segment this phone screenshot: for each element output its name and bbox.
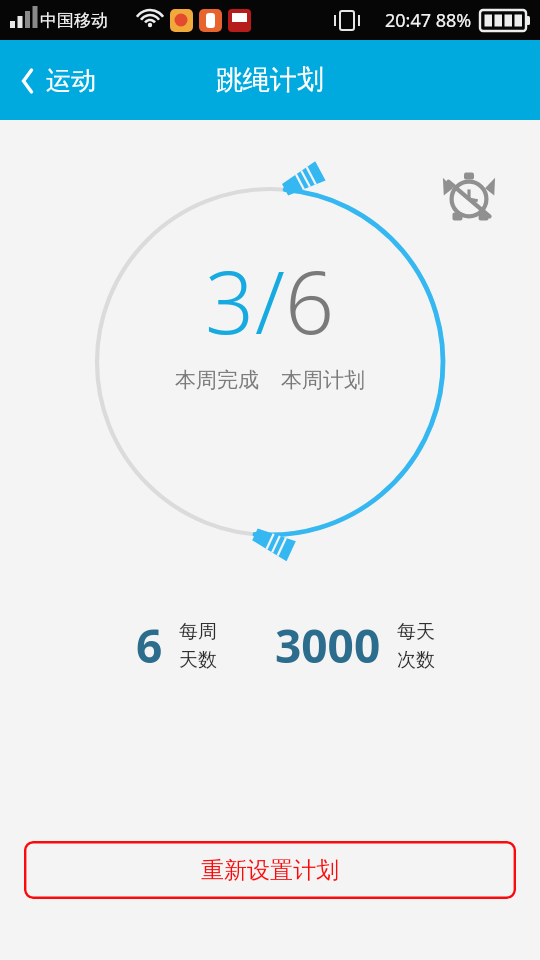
button[interactable]: 运动 [14, 59, 102, 102]
staticText: 每天 [397, 620, 435, 644]
staticText: 跳绳计划 [216, 63, 324, 97]
staticText: 3000 [275, 614, 381, 677]
staticText: 本周计划 [281, 367, 365, 393]
staticText: 6 [285, 242, 335, 359]
staticText: 运动 [46, 65, 96, 96]
staticText: 中国移动 [40, 10, 108, 31]
staticText: 3 [205, 242, 255, 359]
staticText: 6 [136, 614, 163, 677]
button[interactable]: 重新设置计划 [24, 841, 516, 899]
staticText: 天数 [179, 648, 217, 672]
staticText: 每周 [179, 620, 217, 644]
button[interactable]: Alarm off [440, 168, 498, 226]
staticText: 20:47 88% [385, 8, 472, 33]
staticText: 次数 [397, 648, 435, 672]
staticText: 本周完成 [175, 367, 259, 393]
staticText: 重新设置计划 [201, 856, 339, 885]
staticText: / [255, 242, 285, 359]
